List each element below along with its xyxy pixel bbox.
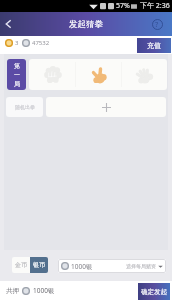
staticText: 共押 [6, 287, 19, 295]
staticText: 47532 [32, 39, 50, 47]
staticText: 银币 [33, 261, 45, 269]
button[interactable]: Rock [29, 59, 75, 90]
staticText: 充值 [147, 41, 161, 50]
button[interactable]: 确定发起 [138, 283, 170, 300]
button[interactable]: Scissors [76, 59, 121, 90]
button[interactable]: 第 一 局 [7, 59, 26, 90]
button[interactable]: 银币 [30, 257, 48, 273]
staticText: ? [155, 19, 159, 29]
button[interactable]: 1000银 [58, 259, 166, 273]
button[interactable]: Back [0, 13, 22, 35]
staticText: 选择每局赌资 [126, 263, 156, 269]
staticText: 1000银 [71, 262, 93, 271]
button[interactable]: Paper [122, 59, 167, 90]
staticText: 第 一 局 [14, 62, 20, 88]
button[interactable]: 充值 [137, 38, 171, 53]
button[interactable]: Help [149, 16, 165, 32]
staticText: 随机出拳 [15, 104, 35, 110]
staticText: 3 [15, 39, 19, 47]
staticText: 确定发起 [141, 288, 167, 296]
staticText: 金币 [15, 261, 27, 269]
button[interactable]: 随机出拳 [6, 97, 43, 117]
staticText: 57% [116, 1, 130, 11]
staticText: 发起猜拳 [69, 19, 103, 30]
staticText: 1000银 [33, 286, 55, 295]
button[interactable]: Add round [46, 97, 166, 117]
button[interactable]: 金币 [12, 257, 30, 273]
staticText: 下午 2:36 [140, 1, 170, 11]
